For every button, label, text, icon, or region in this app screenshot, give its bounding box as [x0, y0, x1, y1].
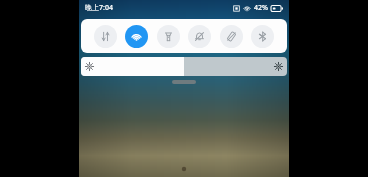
button[interactable]: Silent mode	[188, 25, 211, 48]
staticText: 42%	[254, 3, 268, 13]
button[interactable]: Auto rotate	[220, 25, 243, 48]
button[interactable]: Flashlight	[157, 25, 180, 48]
button[interactable]: Expand quick settings	[172, 80, 196, 84]
staticText: 晚上7:04	[85, 3, 113, 13]
button[interactable]: Bluetooth	[251, 25, 274, 48]
button[interactable]: Mobile data	[94, 25, 117, 48]
button[interactable]: Wi-Fi	[125, 25, 148, 48]
button[interactable]: Brightness	[81, 57, 287, 76]
